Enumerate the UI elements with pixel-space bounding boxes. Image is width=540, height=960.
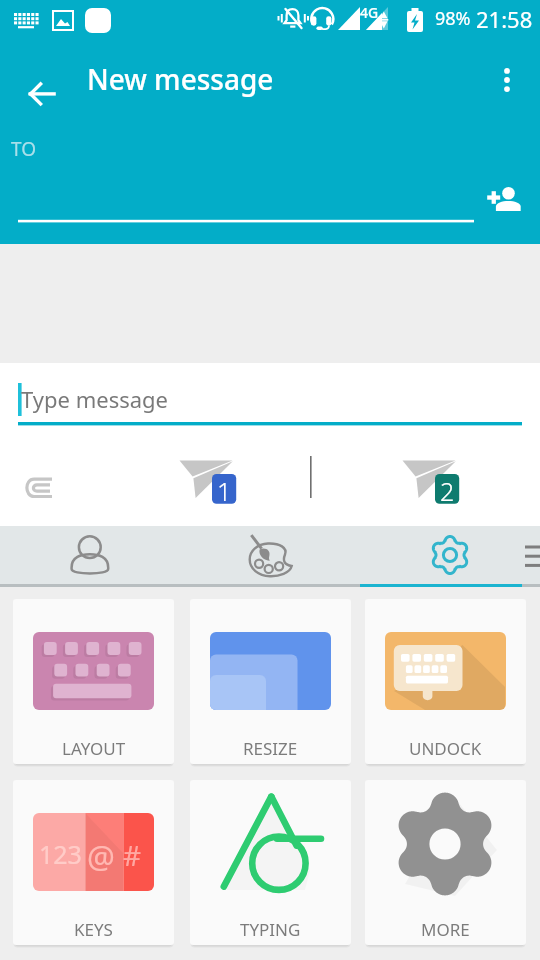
button[interactable]: Send with SIM 2 — [353, 442, 509, 522]
button[interactable]: RESIZE — [190, 599, 351, 764]
button[interactable]: TYPING — [190, 780, 351, 945]
staticText: UNDOCK — [409, 737, 482, 760]
button[interactable]: Add recipient — [479, 175, 529, 223]
staticText: KEYS — [74, 918, 113, 941]
button[interactable]: Send with SIM 1 — [130, 442, 286, 522]
button[interactable]: UNDOCK — [365, 599, 526, 764]
staticText: 2 — [440, 474, 455, 504]
button[interactable]: LAYOUT — [13, 599, 174, 764]
staticText: 1 — [217, 474, 232, 504]
button[interactable]: Themes — [180, 526, 360, 584]
button[interactable]: Settings — [360, 526, 540, 584]
button[interactable]: Account — [0, 526, 180, 584]
staticText: New message — [87, 60, 274, 98]
staticText: 123 — [39, 837, 82, 871]
button[interactable]: Attach file — [4, 439, 84, 519]
button[interactable]: 123 — [13, 780, 174, 945]
staticText: @ — [87, 835, 115, 877]
button[interactable]: More options — [483, 56, 531, 104]
staticText: TO — [11, 136, 37, 162]
staticText: Type message — [21, 384, 169, 414]
button[interactable]: MORE — [365, 780, 526, 945]
staticText: # — [123, 836, 142, 874]
staticText: 21:58 — [476, 4, 533, 34]
staticText: MORE — [421, 918, 470, 941]
staticText: 98% — [435, 6, 471, 31]
staticText: TYPING — [240, 918, 301, 941]
staticText: LAYOUT — [62, 737, 126, 760]
button[interactable]: Navigate up — [18, 56, 66, 104]
staticText: 4G — [360, 3, 379, 22]
button[interactable]: Menu — [500, 526, 540, 584]
staticText: RESIZE — [243, 737, 298, 760]
